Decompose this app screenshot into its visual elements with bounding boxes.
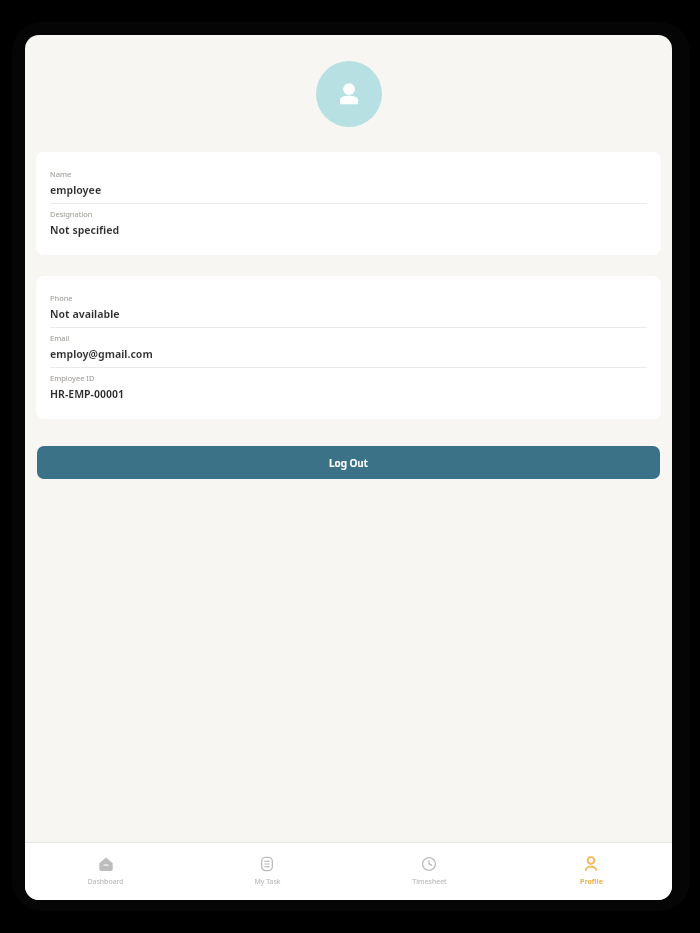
staticText: employ@gmail.com: [50, 347, 153, 361]
button[interactable]: Email: [36, 328, 661, 367]
button[interactable]: Log Out: [37, 446, 660, 479]
button[interactable]: Profile: [510, 842, 672, 900]
staticText: Name: [50, 169, 72, 179]
staticText: Email: [50, 333, 70, 343]
button[interactable]: Employee ID: [36, 368, 661, 407]
staticText: Not specified: [50, 223, 120, 237]
button[interactable]: Dashboard: [25, 842, 186, 900]
staticText: Profile: [580, 877, 603, 887]
button[interactable]: Timesheet: [348, 842, 510, 900]
staticText: Not available: [50, 307, 120, 321]
staticText: employee: [50, 183, 102, 197]
staticText: My Task: [254, 877, 281, 887]
staticText: Log Out: [329, 456, 368, 470]
staticText: HR-EMP-00001: [50, 387, 124, 401]
staticText: Employee ID: [50, 373, 95, 383]
staticText: Designation: [50, 209, 93, 219]
staticText: Phone: [50, 293, 73, 303]
button[interactable]: My Task: [186, 842, 348, 900]
button[interactable]: Name: [36, 164, 661, 203]
staticText: Timesheet: [412, 877, 447, 887]
staticText: Dashboard: [87, 877, 124, 887]
button[interactable]: Designation: [36, 204, 661, 243]
button[interactable]: Phone: [36, 288, 661, 327]
